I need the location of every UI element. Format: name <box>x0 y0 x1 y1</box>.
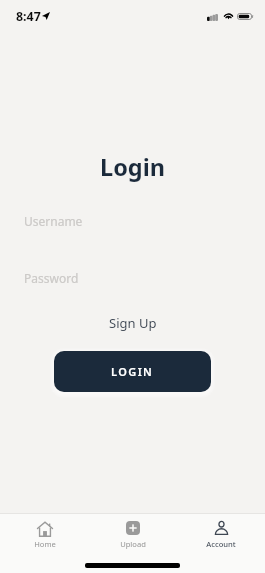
button[interactable]: Password field <box>0 264 265 292</box>
button[interactable]: LOGIN <box>54 351 211 392</box>
button[interactable]: Username field <box>0 207 265 235</box>
button[interactable]: Sign Up <box>101 311 165 335</box>
staticText: LOGIN <box>111 364 154 379</box>
staticText: Upload <box>120 539 146 549</box>
staticText: Login <box>100 151 165 183</box>
staticText: Username <box>24 213 83 229</box>
staticText: Account <box>206 539 236 549</box>
button[interactable]: Home <box>9 514 81 549</box>
staticText: Sign Up <box>109 314 157 332</box>
button[interactable]: Upload <box>97 514 169 549</box>
staticText: 8:47 <box>16 8 41 25</box>
staticText: Password <box>24 270 79 286</box>
button[interactable]: Account <box>185 514 257 549</box>
staticText: Home <box>34 539 56 549</box>
